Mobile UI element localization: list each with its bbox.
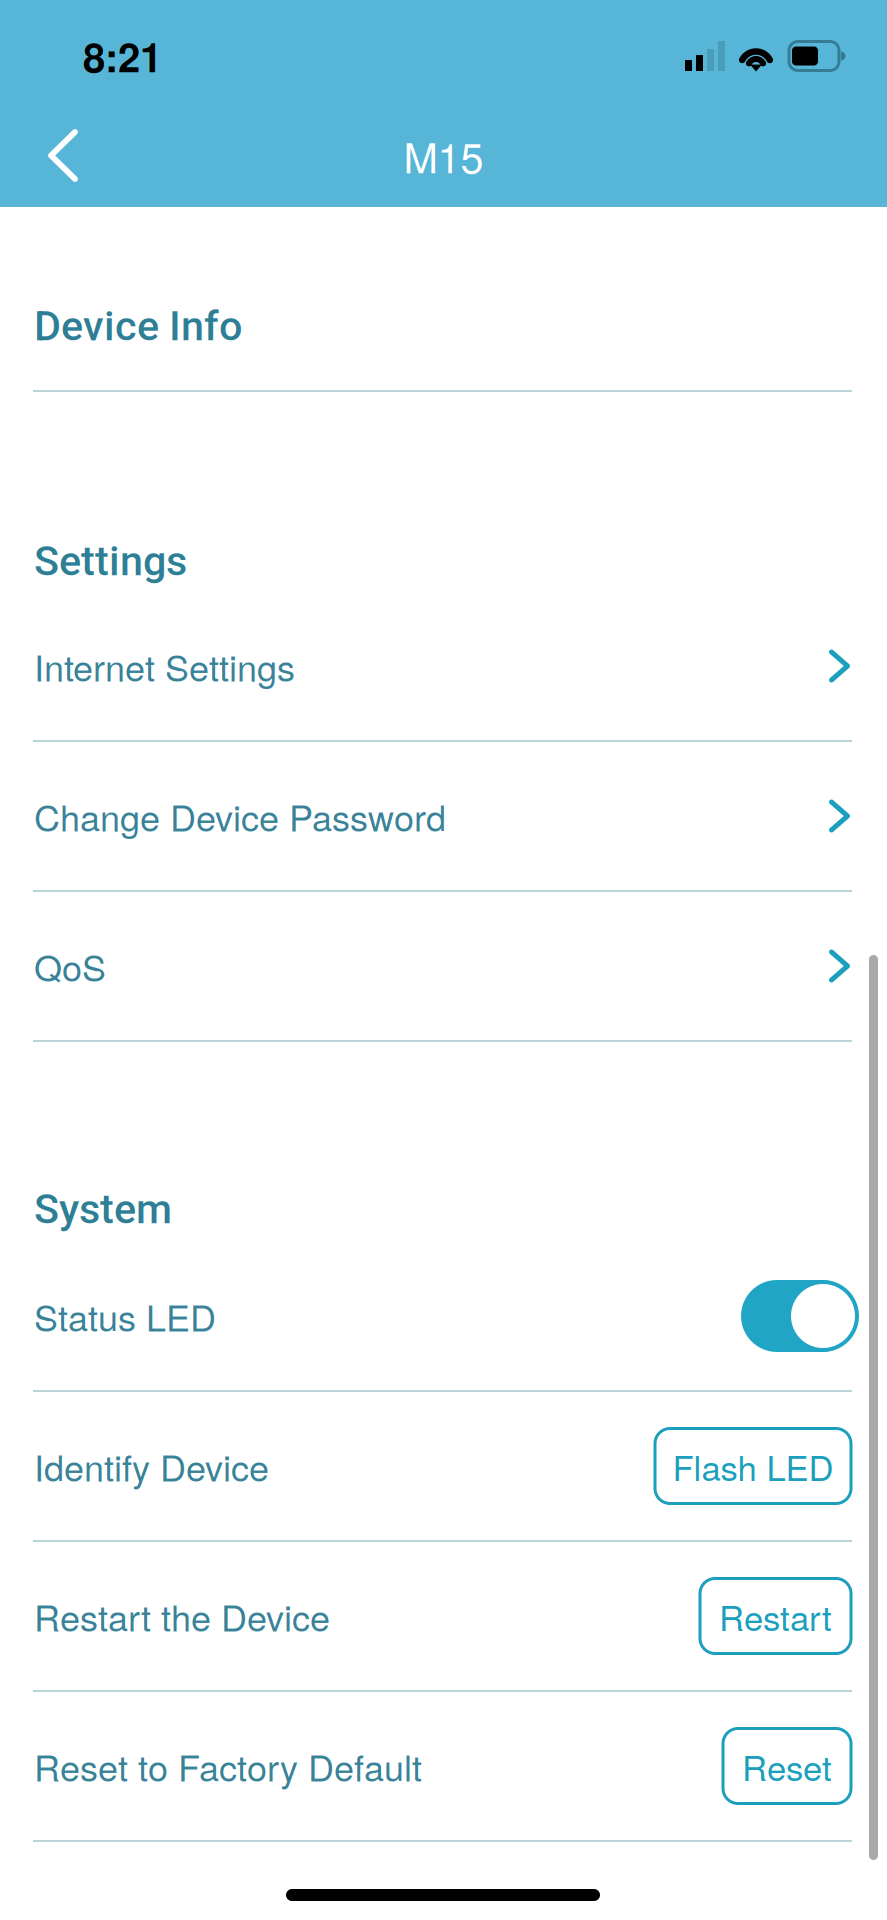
staticText: Status LED bbox=[34, 1290, 216, 1342]
staticText: Settings bbox=[34, 537, 187, 585]
button[interactable]: Status LED bbox=[741, 1280, 857, 1352]
staticText: Reset bbox=[742, 1741, 832, 1791]
button[interactable]: Restart bbox=[700, 1578, 851, 1653]
button[interactable]: Reset bbox=[723, 1728, 851, 1803]
staticText: Internet Settings bbox=[34, 640, 295, 692]
staticText: QoS bbox=[34, 940, 106, 992]
staticText: Identify Device bbox=[34, 1440, 269, 1492]
staticText: Restart bbox=[719, 1591, 832, 1641]
staticText: M15 bbox=[403, 126, 483, 185]
button[interactable]: QoS bbox=[0, 892, 887, 1040]
staticText: Reset to Factory Default bbox=[34, 1740, 422, 1792]
staticText: System bbox=[34, 1185, 172, 1233]
staticText: Restart the Device bbox=[34, 1590, 330, 1642]
button[interactable]: Flash LED bbox=[655, 1428, 851, 1503]
button[interactable]: Back bbox=[0, 112, 110, 198]
staticText: Device Info bbox=[34, 302, 242, 350]
button[interactable]: Change Device Password bbox=[0, 742, 887, 890]
staticText: 8:21 bbox=[83, 27, 162, 85]
button[interactable]: Internet Settings bbox=[0, 592, 887, 740]
staticText: Flash LED bbox=[672, 1441, 833, 1491]
staticText: Change Device Password bbox=[34, 790, 446, 842]
